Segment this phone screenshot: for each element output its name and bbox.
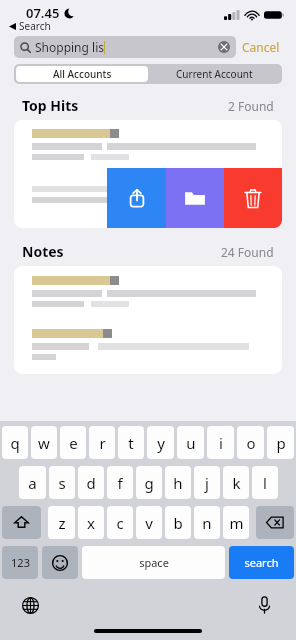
staticText: j xyxy=(205,473,209,493)
staticText: search xyxy=(244,555,279,570)
button[interactable]: u xyxy=(177,426,204,459)
button[interactable]: l xyxy=(252,466,278,499)
staticText: x xyxy=(87,513,95,533)
staticText: Current Account xyxy=(176,67,253,81)
button[interactable]: y xyxy=(147,426,174,459)
staticText: g xyxy=(144,473,154,493)
button[interactable]: s xyxy=(49,466,75,499)
button[interactable]: Backspace xyxy=(256,506,294,539)
staticText: b xyxy=(173,513,183,533)
button[interactable]: Share xyxy=(107,168,166,228)
staticText: d xyxy=(86,473,96,493)
button[interactable]: a xyxy=(19,466,46,499)
button[interactable]: b xyxy=(165,506,191,539)
button[interactable]: 123 xyxy=(2,546,38,579)
staticText: t xyxy=(128,433,134,453)
button[interactable]: x xyxy=(78,506,104,539)
button[interactable]: p xyxy=(267,426,294,459)
staticText: q xyxy=(10,433,20,453)
button[interactable]: Move to folder xyxy=(166,168,224,228)
button[interactable]: v xyxy=(136,506,162,539)
button[interactable]: space xyxy=(82,546,225,579)
staticText: r xyxy=(99,433,106,453)
staticText: y xyxy=(157,433,165,453)
button[interactable]: c xyxy=(107,506,133,539)
button[interactable]: Delete xyxy=(224,168,282,228)
staticText: 24 Found xyxy=(221,244,274,260)
staticText: Cancel xyxy=(242,39,280,55)
button[interactable]: Shift xyxy=(2,506,41,539)
staticText: 07.45 xyxy=(26,4,60,22)
staticText: s xyxy=(58,473,66,493)
button[interactable]: q xyxy=(2,426,28,459)
button[interactable]: h xyxy=(165,466,191,499)
staticText: u xyxy=(186,433,196,453)
button[interactable]: Current Account xyxy=(148,66,280,82)
staticText: k xyxy=(232,473,241,493)
staticText: e xyxy=(69,433,78,453)
button[interactable]: Clear text xyxy=(218,41,230,53)
button[interactable]: t xyxy=(118,426,144,459)
button[interactable]: r xyxy=(89,426,115,459)
button[interactable]: g xyxy=(136,466,162,499)
button[interactable]: Dictate xyxy=(254,595,274,615)
staticText: Notes xyxy=(22,242,64,261)
staticText: All Accounts xyxy=(53,67,112,81)
staticText: n xyxy=(202,513,212,533)
staticText: 123 xyxy=(11,555,30,570)
staticText: v xyxy=(145,513,153,533)
staticText: f xyxy=(117,473,123,493)
staticText: h xyxy=(173,473,183,493)
button[interactable]: d xyxy=(78,466,104,499)
button[interactable]: Cancel xyxy=(236,36,286,58)
staticText: w xyxy=(38,433,50,453)
staticText: i xyxy=(219,433,223,453)
button[interactable]: z xyxy=(48,506,75,539)
staticText: Shopping lis xyxy=(35,39,104,55)
staticText: Top Hits xyxy=(22,96,79,115)
staticText: Search xyxy=(19,19,51,33)
button[interactable]: Emoji xyxy=(42,546,78,579)
staticText: 2 Found xyxy=(228,98,274,114)
button[interactable]: o xyxy=(237,426,264,459)
button[interactable]: search xyxy=(229,546,294,579)
button[interactable]: w xyxy=(31,426,57,459)
button[interactable]: e xyxy=(60,426,86,459)
staticText: a xyxy=(28,473,37,493)
staticText: l xyxy=(263,473,267,493)
button[interactable]: All Accounts xyxy=(16,66,148,82)
button[interactable]: k xyxy=(223,466,249,499)
button[interactable]: Shopping lis xyxy=(14,36,236,58)
button[interactable]: j xyxy=(194,466,220,499)
staticText: space xyxy=(139,555,169,570)
button[interactable]: i xyxy=(207,426,234,459)
button[interactable]: m xyxy=(223,506,249,539)
staticText: z xyxy=(58,513,66,533)
button[interactable]: f xyxy=(107,466,133,499)
staticText: c xyxy=(116,513,124,533)
button[interactable]: n xyxy=(194,506,220,539)
button[interactable]: Change keyboard xyxy=(20,595,40,615)
staticText: m xyxy=(229,513,244,533)
staticText: p xyxy=(276,433,286,453)
staticText: o xyxy=(246,433,256,453)
